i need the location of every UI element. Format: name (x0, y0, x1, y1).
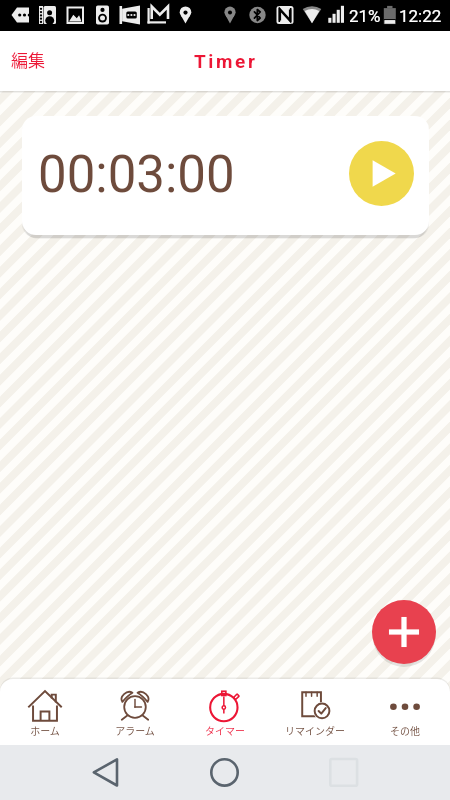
staticText: 編集 (11, 47, 45, 72)
button[interactable]: リマインダー (270, 679, 360, 745)
button[interactable]: 編集 (0, 37, 56, 82)
button[interactable]: 00:03:00 (22, 116, 429, 235)
button[interactable]: Add timer (372, 600, 436, 664)
button[interactable]: タイマー (180, 679, 270, 745)
staticText: ホーム (30, 723, 60, 737)
button[interactable]: その他 (360, 679, 450, 745)
button[interactable]: Start timer (349, 141, 414, 206)
button[interactable]: ホーム (0, 679, 90, 745)
staticText: 00:03:00 (38, 145, 235, 205)
staticText: 12:22 (399, 6, 442, 26)
staticText: Timer (194, 50, 258, 72)
button[interactable]: アラーム (90, 679, 180, 745)
staticText: アラーム (115, 723, 155, 737)
staticText: 21% (349, 6, 381, 26)
staticText: リマインダー (285, 723, 345, 737)
staticText: その他 (390, 723, 420, 737)
staticText: タイマー (205, 723, 245, 737)
